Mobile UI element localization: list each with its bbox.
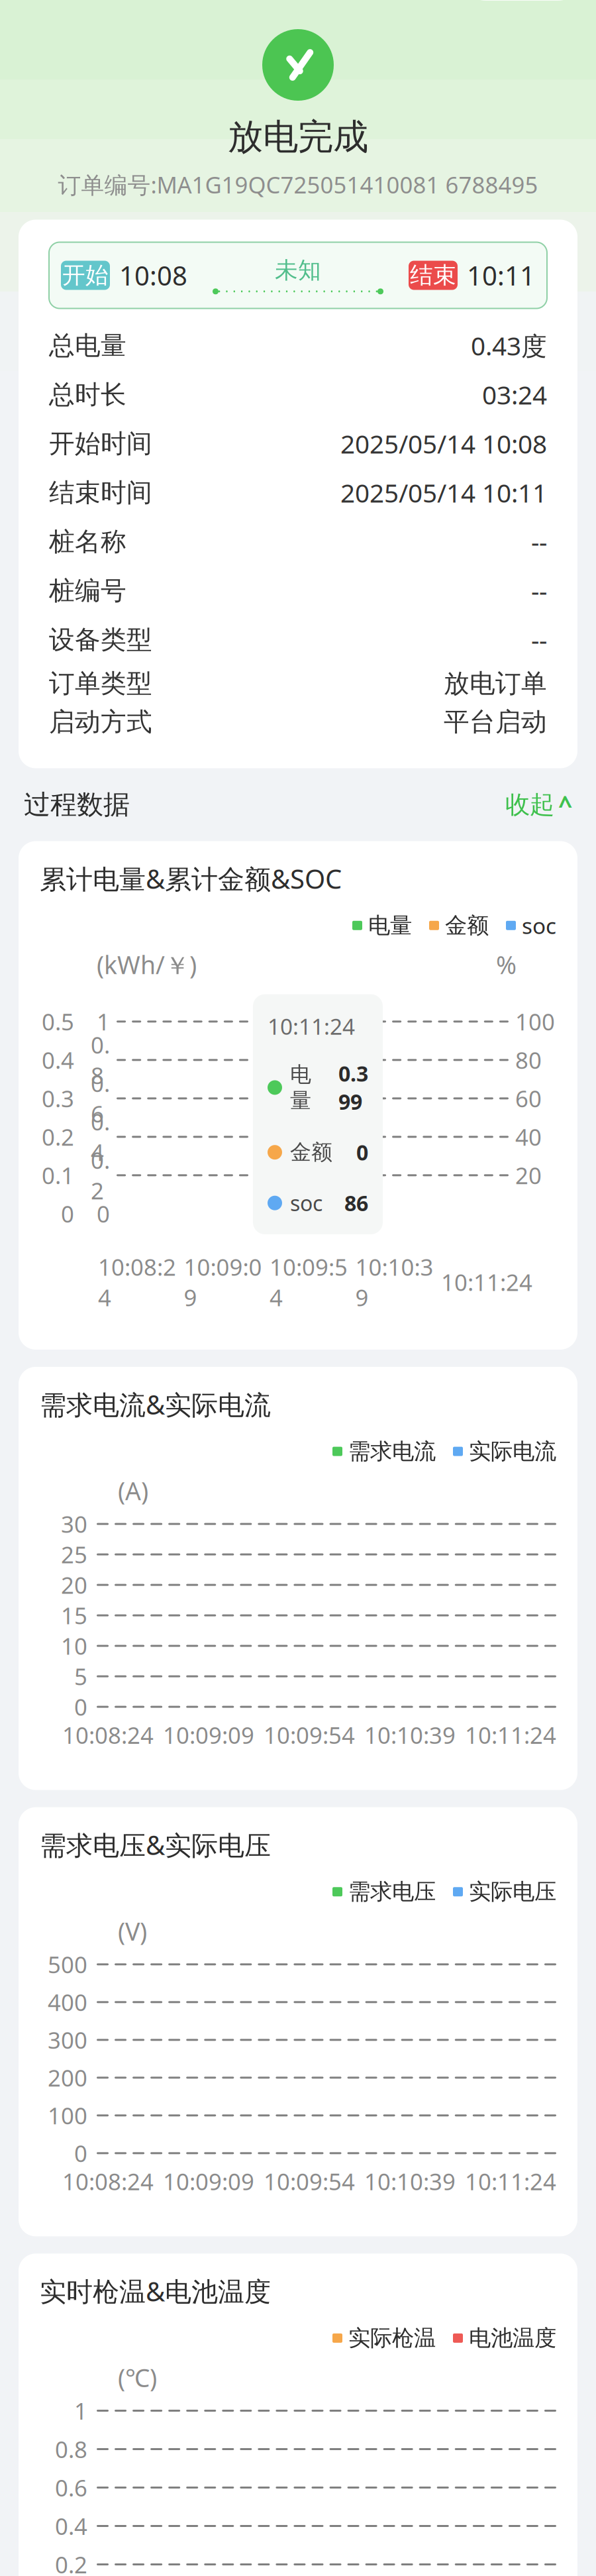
staticText: 20 bbox=[61, 1570, 87, 1600]
staticText: 10:10:39 bbox=[364, 1720, 456, 1750]
staticText: 10:09:09 bbox=[184, 1251, 262, 1313]
staticText: 需求电压&实际电压 bbox=[40, 1827, 271, 1862]
staticText: -- bbox=[531, 525, 547, 559]
staticText: 0 bbox=[61, 1198, 74, 1229]
button[interactable]: 收起 bbox=[505, 788, 572, 821]
staticText: 10:09:09 bbox=[163, 1720, 254, 1750]
staticText: 30 bbox=[61, 1509, 87, 1539]
staticText: 放电完成 bbox=[228, 115, 368, 159]
staticText: 订单类型 bbox=[49, 668, 152, 699]
staticText: 10:08:24 bbox=[62, 1720, 154, 1750]
staticText: 10:11:24 bbox=[441, 1267, 532, 1297]
staticText: 300 bbox=[48, 2025, 87, 2055]
staticText: 60 bbox=[515, 1083, 542, 1114]
staticText: 桩编号 bbox=[49, 575, 126, 606]
staticText: 400 bbox=[48, 1987, 87, 2017]
staticText: (V) bbox=[118, 1915, 147, 1947]
staticText: 25 bbox=[61, 1539, 87, 1570]
staticText: 金额 bbox=[445, 912, 489, 939]
staticText: soc bbox=[290, 1189, 323, 1217]
staticText: % bbox=[496, 948, 517, 981]
staticText: 实际枪温 bbox=[348, 2325, 436, 2352]
staticText: 需求电流 bbox=[348, 1438, 436, 1465]
staticText: 平台启动 bbox=[444, 706, 547, 738]
staticText: 电量 bbox=[368, 912, 412, 939]
staticText: 0.2 bbox=[91, 1145, 110, 1206]
staticText: 0 bbox=[74, 1692, 87, 1722]
staticText: 0.2 bbox=[42, 1122, 74, 1152]
staticText: 100 bbox=[48, 2100, 87, 2131]
staticText: 86 bbox=[344, 1189, 368, 1217]
staticText: 实际电流 bbox=[469, 1438, 556, 1465]
staticText: 10:11:24 bbox=[465, 2166, 556, 2197]
staticText: -- bbox=[531, 623, 547, 657]
staticText: 10:11:24 bbox=[465, 1720, 556, 1750]
staticText: 总电量 bbox=[49, 330, 126, 361]
staticText: 需求电压 bbox=[348, 1878, 436, 1905]
staticText: 10:10:39 bbox=[364, 2166, 456, 2197]
staticText: 总时长 bbox=[49, 379, 126, 410]
staticText: 0 bbox=[97, 1198, 110, 1229]
staticText: -- bbox=[531, 574, 547, 608]
staticText: 10:09:54 bbox=[264, 2166, 355, 2197]
staticText: 0.2 bbox=[55, 2549, 87, 2576]
staticText: 100 bbox=[515, 1006, 555, 1037]
staticText: 0 bbox=[356, 1138, 368, 1166]
staticText: 订单编号:MA1G19QC725051410081 6788495 bbox=[58, 169, 538, 200]
staticText: 结束 bbox=[410, 261, 456, 289]
staticText: 500 bbox=[48, 1949, 87, 1980]
staticText: 80 bbox=[515, 1045, 542, 1075]
staticText: (A) bbox=[118, 1474, 148, 1507]
staticText: 需求电流&实际电流 bbox=[40, 1387, 271, 1422]
staticText: 10 bbox=[61, 1631, 87, 1661]
staticText: 累计电量&累计金额&SOC bbox=[40, 861, 342, 896]
staticText: 1 bbox=[97, 1006, 110, 1037]
staticText: 15 bbox=[61, 1600, 87, 1631]
staticText: 0.6 bbox=[91, 1068, 110, 1129]
staticText: 0.8 bbox=[55, 2434, 87, 2464]
staticText: 启动方式 bbox=[49, 706, 152, 738]
staticText: 0.4 bbox=[55, 2511, 87, 2541]
staticText: 0 bbox=[74, 2138, 87, 2168]
staticText: 开始时间 bbox=[49, 428, 152, 459]
button[interactable]: More and close bbox=[465, 0, 579, 1]
staticText: 2025/05/14 10:11 bbox=[340, 476, 547, 510]
staticText: 实时枪温&电池温度 bbox=[40, 2273, 271, 2309]
staticText: 过程数据 bbox=[24, 788, 130, 821]
staticText: 200 bbox=[48, 2062, 87, 2093]
staticText: 金额 bbox=[290, 1139, 332, 1165]
staticText: 20 bbox=[515, 1160, 542, 1190]
staticText: 0.5 bbox=[42, 1006, 74, 1037]
staticText: 电池温度 bbox=[469, 2325, 556, 2352]
staticText: 10:09:54 bbox=[264, 1720, 355, 1750]
staticText: soc bbox=[522, 911, 556, 940]
staticText: 10:08:24 bbox=[98, 1251, 176, 1313]
staticText: 10:08 bbox=[119, 258, 187, 293]
staticText: 10:11 bbox=[467, 258, 535, 293]
staticText: 桩名称 bbox=[49, 526, 126, 557]
staticText: ^ bbox=[558, 788, 572, 821]
staticText: 0.8 bbox=[91, 1029, 110, 1090]
staticText: 2025/05/14 10:08 bbox=[340, 427, 547, 461]
staticText: 1 bbox=[74, 2395, 87, 2426]
staticText: 5 bbox=[74, 1661, 87, 1692]
staticText: 设备类型 bbox=[49, 624, 152, 655]
staticText: (kWh/￥) bbox=[97, 948, 197, 981]
staticText: 0.4 bbox=[91, 1106, 110, 1167]
staticText: 0.6 bbox=[55, 2472, 87, 2503]
staticText: 0.399 bbox=[338, 1059, 368, 1116]
staticText: 实际电压 bbox=[469, 1878, 556, 1905]
staticText: 10:10:39 bbox=[355, 1251, 433, 1313]
staticText: 10:08:24 bbox=[62, 2166, 154, 2197]
staticText: (℃) bbox=[118, 2361, 157, 2394]
staticText: 10:09:54 bbox=[270, 1251, 348, 1313]
staticText: 03:24 bbox=[482, 378, 547, 412]
staticText: 0.43度 bbox=[471, 329, 547, 363]
staticText: 电量 bbox=[290, 1061, 311, 1114]
staticText: 0.3 bbox=[42, 1083, 74, 1114]
staticText: 结束时间 bbox=[49, 477, 152, 508]
staticText: 未知 bbox=[275, 256, 321, 284]
staticText: 40 bbox=[515, 1122, 542, 1152]
